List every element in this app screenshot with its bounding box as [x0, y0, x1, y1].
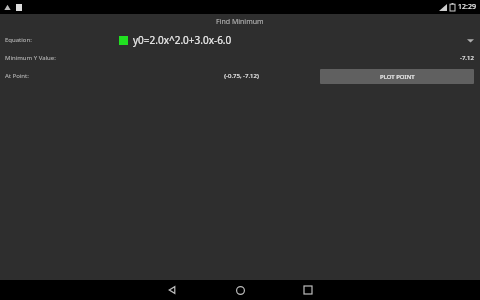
- button[interactable]: Minimum Y Value:: [0, 50, 480, 66]
- button[interactable]: Home: [220, 280, 260, 300]
- staticText: y0=2.0x^2.0+3.0x-6.0: [133, 33, 232, 47]
- button[interactable]: Select equation: [464, 34, 476, 46]
- staticText: Minimum Y Value:: [5, 54, 56, 62]
- staticText: Find Minimum: [216, 17, 264, 27]
- staticText: -7.12: [460, 54, 474, 62]
- button[interactable]: Recent apps: [288, 280, 328, 300]
- button[interactable]: Back: [152, 280, 192, 300]
- staticText: Equation:: [5, 36, 32, 44]
- staticText: 12:29: [458, 2, 476, 12]
- staticText: At Point:: [5, 72, 29, 80]
- staticText: PLOT POINT: [380, 73, 415, 81]
- button[interactable]: PLOT POINT: [320, 69, 474, 84]
- staticText: (-0.75, -7.12): [224, 72, 259, 80]
- button[interactable]: Equation:: [0, 30, 480, 50]
